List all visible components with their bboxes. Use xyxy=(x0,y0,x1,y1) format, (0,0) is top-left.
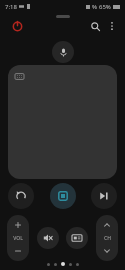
staticText: VOL xyxy=(13,235,23,242)
button[interactable]: Rewind xyxy=(8,183,34,209)
button[interactable]: More options xyxy=(104,18,120,34)
button[interactable]: Mute xyxy=(37,227,59,249)
button[interactable]: Channel xyxy=(96,215,118,261)
button[interactable]: Volume xyxy=(7,215,29,261)
button[interactable]: Voice search xyxy=(52,41,74,63)
button[interactable]: Play pause xyxy=(50,183,76,209)
staticText: % xyxy=(92,3,97,11)
button[interactable]: Keyboard xyxy=(13,70,26,83)
button[interactable]: Skip next xyxy=(91,183,117,209)
button[interactable]: Guide xyxy=(66,227,88,249)
button[interactable]: Power xyxy=(8,17,26,35)
staticText: CH xyxy=(104,235,111,242)
button[interactable]: Touchpad xyxy=(8,65,117,179)
button[interactable]: Search xyxy=(86,17,104,35)
staticText: 65% xyxy=(99,3,111,11)
staticText: 7:18 xyxy=(5,3,17,11)
